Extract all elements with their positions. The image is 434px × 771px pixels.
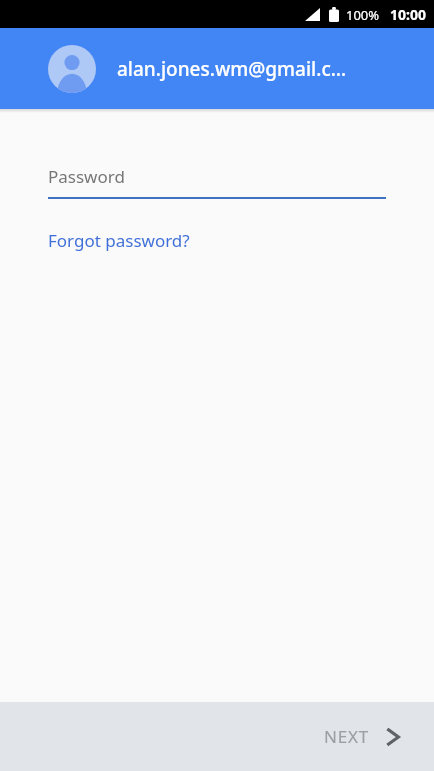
button[interactable]: NEXT (300, 711, 434, 762)
staticText: 100% (346, 6, 380, 24)
button[interactable]: Forgot password? (0, 227, 238, 254)
staticText: Password (48, 165, 125, 188)
staticText: alan.jones.wm@gmail.c… (117, 56, 347, 82)
button[interactable]: Password (0, 165, 434, 199)
staticText: NEXT (324, 725, 369, 748)
staticText: 10:00 (390, 5, 426, 24)
staticText: Forgot password? (48, 229, 190, 252)
button[interactable]: alan.jones.wm@gmail.c… (0, 28, 434, 109)
